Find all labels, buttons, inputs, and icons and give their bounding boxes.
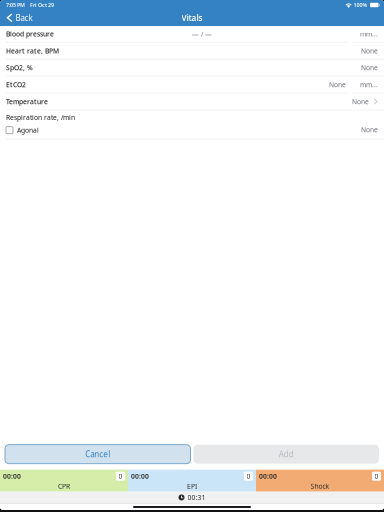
staticText: — / —: [192, 29, 212, 38]
staticText: Blood pressure: [6, 29, 54, 38]
staticText: Back: [15, 13, 32, 23]
button[interactable]: 00:00: [128, 470, 256, 492]
staticText: 00:00: [3, 472, 21, 481]
staticText: 0: [246, 472, 250, 481]
staticText: None: [352, 97, 369, 106]
button[interactable]: Add: [193, 445, 379, 464]
staticText: Heart rate, BPM: [6, 46, 59, 55]
staticText: 7:05 PM: [6, 1, 25, 9]
staticText: Shock: [310, 482, 329, 491]
button[interactable]: EtCO2: [0, 77, 384, 93]
staticText: EtCO2: [6, 80, 26, 89]
staticText: None: [361, 125, 378, 134]
button[interactable]: SpO2, %: [0, 60, 384, 76]
staticText: Add: [279, 449, 294, 459]
button[interactable]: Heart rate, BPM: [0, 43, 384, 59]
staticText: SpO2, %: [6, 63, 33, 72]
button[interactable]: Temperature: [0, 94, 384, 109]
staticText: EPI: [187, 482, 197, 491]
button[interactable]: Cancel: [5, 445, 190, 464]
staticText: Agonal: [17, 126, 39, 135]
staticText: 0: [374, 472, 378, 481]
staticText: Cancel: [85, 449, 110, 459]
staticText: CPR: [58, 482, 70, 491]
staticText: None: [361, 63, 378, 72]
staticText: Temperature: [6, 97, 48, 106]
staticText: mm...: [360, 80, 378, 89]
staticText: 0: [118, 472, 122, 481]
staticText: 00:00: [259, 472, 277, 481]
staticText: Fri Oct 29: [30, 1, 54, 9]
button[interactable]: Blood pressure: [0, 26, 384, 42]
button[interactable]: Back: [0, 10, 38, 26]
staticText: 100%: [353, 1, 367, 9]
button[interactable]: Respiration rate, /min: [0, 110, 384, 138]
staticText: 00:31: [187, 493, 205, 502]
button[interactable]: 00:00: [256, 470, 384, 492]
staticText: mm...: [360, 29, 378, 38]
staticText: None: [361, 46, 378, 55]
staticText: 00:00: [131, 472, 149, 481]
staticText: Respiration rate, /min: [6, 113, 75, 122]
button[interactable]: 00:00: [0, 470, 128, 492]
staticText: Vitals: [181, 13, 202, 23]
staticText: None: [329, 80, 346, 89]
